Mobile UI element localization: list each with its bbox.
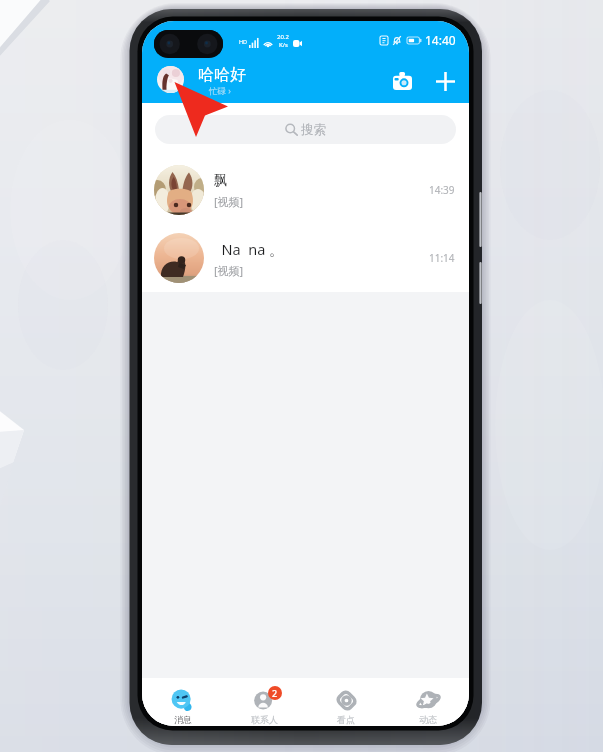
staticText: 14:39 xyxy=(429,183,455,197)
button[interactable]: Camera xyxy=(386,65,418,97)
button[interactable]: Na na 。 xyxy=(142,224,469,292)
staticText: Na na 。 xyxy=(214,239,284,259)
staticText: [视频] xyxy=(214,194,244,209)
staticText: 14:40 xyxy=(425,32,456,48)
staticText: 搜索 xyxy=(301,122,326,138)
staticText: 哈哈好 xyxy=(198,65,246,85)
staticText: 20.2 xyxy=(277,33,289,41)
button[interactable]: 2 xyxy=(223,678,305,726)
staticText: [视频] xyxy=(214,263,244,278)
staticText: 飘 xyxy=(214,172,228,189)
button[interactable]: 动态 xyxy=(387,678,469,726)
button[interactable]: Add xyxy=(429,65,461,97)
staticText: 忙碌 › xyxy=(209,85,231,97)
staticText: 看点 xyxy=(337,714,355,725)
button[interactable]: 飘 xyxy=(142,156,469,224)
button[interactable]: 搜索 xyxy=(155,115,456,144)
button[interactable]: Profile avatar xyxy=(157,66,184,93)
button[interactable]: 消息 xyxy=(142,678,223,726)
staticText: 2 xyxy=(272,687,278,699)
staticText: HD xyxy=(239,38,248,45)
staticText: 联系人 xyxy=(251,714,278,725)
staticText: 消息 xyxy=(174,714,192,725)
staticText: 动态 xyxy=(419,714,437,725)
staticText: 11:14 xyxy=(429,251,455,265)
button[interactable]: 看点 xyxy=(305,678,387,726)
staticText: K/s xyxy=(279,41,288,49)
